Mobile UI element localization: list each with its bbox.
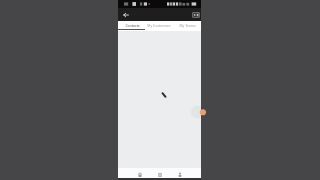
- button[interactable]: Back: [120, 9, 131, 20]
- staticText: My Teams: [179, 23, 196, 28]
- button[interactable]: Add: [190, 105, 204, 119]
- button[interactable]: Scan card: [190, 9, 201, 20]
- staticText: Contacts: [125, 23, 140, 28]
- button[interactable]: My Customers: [145, 21, 173, 31]
- button[interactable]: Scan: [150, 168, 170, 178]
- button[interactable]: My Teams: [173, 21, 201, 31]
- button[interactable]: Home: [130, 168, 150, 178]
- button[interactable]: Contacts: [118, 21, 145, 31]
- button[interactable]: Profile: [170, 168, 190, 178]
- staticText: My Customers: [147, 23, 171, 28]
